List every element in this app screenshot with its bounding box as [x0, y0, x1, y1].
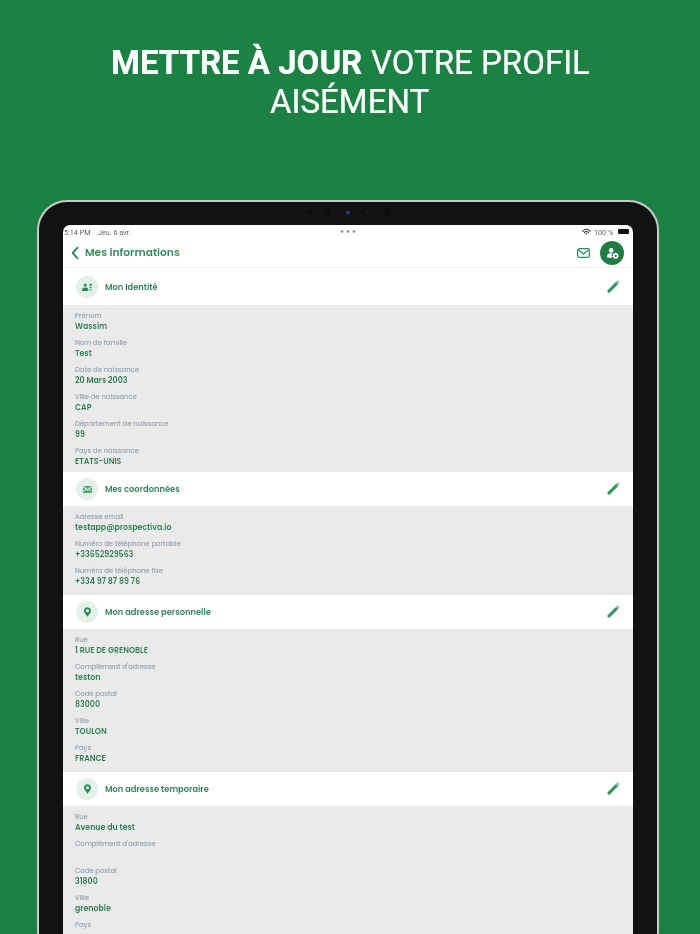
- staticText: Mes informations: [85, 245, 180, 260]
- staticText: 31800: [75, 876, 98, 887]
- staticText: Numéro de téléphone fixe: [75, 566, 163, 576]
- staticText: Pays de naissance: [75, 446, 139, 456]
- staticText: Date de naissance: [75, 365, 139, 375]
- staticText: Département de naissance: [75, 419, 169, 429]
- staticText: 100 %: [594, 228, 614, 236]
- staticText: Rue: [75, 812, 88, 822]
- staticText: Ville: [75, 716, 89, 726]
- staticText: Mon adresse personnelle: [105, 606, 211, 618]
- staticText: 99: [75, 429, 85, 440]
- staticText: +334 97 87 89 76: [75, 576, 141, 587]
- button[interactable]: Messages: [573, 243, 593, 263]
- staticText: Wassim: [75, 321, 108, 332]
- staticText: 83000: [75, 699, 100, 710]
- staticText: Mon Identité: [105, 281, 158, 293]
- staticText: Code postal: [75, 689, 117, 699]
- button[interactable]: Edit Mes coordonnées: [603, 479, 623, 499]
- staticText: Complément d'adresse: [75, 662, 156, 672]
- button[interactable]: Mes coordonnées: [63, 472, 633, 506]
- staticText: Prénom: [75, 311, 102, 321]
- staticText: Avenue du test: [75, 822, 135, 833]
- button[interactable]: Mon adresse temporaire: [63, 772, 633, 806]
- staticText: Pays: [75, 743, 92, 753]
- staticText: testapp@prospectiva.io: [75, 522, 172, 533]
- staticText: Jeu. 6 avr.: [98, 228, 131, 236]
- staticText: Mon adresse temporaire: [105, 783, 209, 795]
- staticText: Ville de naissance: [75, 392, 137, 402]
- staticText: Adresse email: [75, 512, 124, 522]
- button[interactable]: Edit Mon adresse personnelle: [603, 602, 623, 622]
- staticText: teston: [75, 672, 101, 683]
- staticText: Test: [75, 348, 92, 359]
- staticText: VOTRE PROFIL: [371, 43, 590, 82]
- staticText: CAP: [75, 402, 92, 413]
- staticText: grenoble: [75, 903, 111, 914]
- staticText: AISÉMENT: [270, 82, 430, 121]
- staticText: Mes coordonnées: [105, 483, 180, 495]
- staticText: Pays: [75, 920, 92, 930]
- staticText: 1 RUE DE GRENOBLE: [75, 645, 148, 656]
- staticText: Complément d'adresse: [75, 839, 156, 849]
- button[interactable]: Account settings: [600, 241, 624, 265]
- button[interactable]: Mon Identité: [63, 268, 633, 305]
- staticText: Nom de famille: [75, 338, 127, 348]
- staticText: ETATS-UNIS: [75, 456, 122, 467]
- button[interactable]: Mon adresse personnelle: [63, 595, 633, 629]
- staticText: Rue: [75, 635, 88, 645]
- staticText: +33652929563: [75, 549, 134, 560]
- staticText: 20 Mars 2003: [75, 375, 128, 386]
- staticText: TOULON: [75, 726, 107, 737]
- staticText: Ville: [75, 893, 89, 903]
- staticText: 5:14 PM: [64, 228, 91, 236]
- staticText: FRANCE: [75, 753, 106, 764]
- staticText: Numéro de téléphone portable: [75, 539, 181, 549]
- staticText: METTRE À JOUR: [111, 43, 371, 82]
- button[interactable]: Back: [68, 246, 82, 260]
- button[interactable]: Edit Mon Identité: [603, 277, 623, 297]
- staticText: Code postal: [75, 866, 117, 876]
- button[interactable]: Edit Mon adresse temporaire: [603, 779, 623, 799]
